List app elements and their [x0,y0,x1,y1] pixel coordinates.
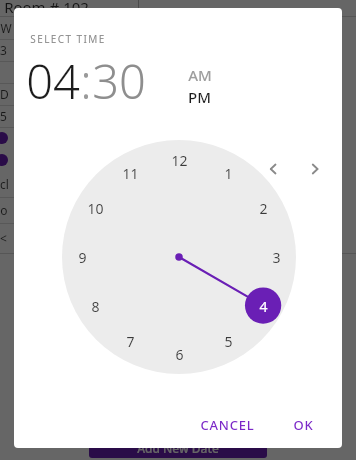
button[interactable]: 04 [26,49,80,113]
staticText: 8 [91,297,100,316]
staticText: PM [188,87,211,107]
staticText: 3 [0,42,7,58]
button[interactable]: 4 [250,293,276,319]
staticText: o [0,202,8,218]
staticText: cl [0,176,9,192]
button[interactable]: 11 [117,160,143,186]
button[interactable]: AM [188,64,222,86]
button[interactable]: 5 [215,328,241,354]
button[interactable]: CANCEL [190,408,265,442]
button[interactable]: 9 [69,244,95,270]
button[interactable]: Add New Date [89,438,267,458]
button[interactable]: 3 [263,244,289,270]
staticText: 7 [126,332,135,351]
staticText: 5 [0,108,7,124]
staticText: 30 [92,49,146,113]
button[interactable]: Previous [256,152,290,186]
staticText: W [0,20,12,36]
button[interactable]: OK [283,408,324,442]
button[interactable]: 8 [82,293,108,319]
button[interactable]: 1 [215,160,241,186]
staticText: 5 [224,332,233,351]
button[interactable]: 7 [117,328,143,354]
staticText: AM [188,65,212,85]
staticText: 2 [259,199,268,218]
staticText: 10 [87,199,104,218]
staticText: D [0,86,9,102]
staticText: 12 [171,151,188,170]
button[interactable]: 6 [166,341,192,367]
staticText: Room # 102 [4,0,89,13]
staticText: 6 [175,345,184,364]
staticText: < [0,230,7,246]
staticText: SELECT TIME [30,32,106,46]
button[interactable]: 10 [82,195,108,221]
staticText: 1 [224,164,233,183]
button[interactable]: PM [188,86,222,108]
button[interactable]: 30 [92,49,146,113]
staticText: Add New Date [137,440,219,456]
button[interactable]: 12 [166,147,192,173]
button[interactable]: 2 [250,195,276,221]
staticText: : [80,49,92,113]
staticText: 9 [78,248,87,267]
staticText: CANCEL [200,416,255,434]
staticText: 3 [272,248,281,267]
button[interactable]: Next [298,152,332,186]
staticText: OK [293,416,314,434]
staticText: 4 [259,297,268,316]
staticText: 11 [122,164,139,183]
staticText: 04 [26,49,80,113]
